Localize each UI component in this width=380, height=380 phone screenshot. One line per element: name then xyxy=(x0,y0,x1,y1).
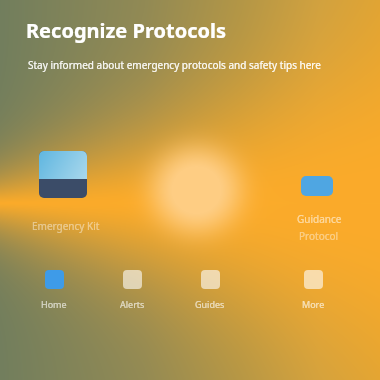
staticText: Recognize Protocols xyxy=(26,17,226,44)
staticText: Protocol xyxy=(299,229,339,243)
staticText: Guides xyxy=(195,298,225,310)
staticText: Stay informed about emergency protocols … xyxy=(28,58,321,72)
button[interactable]: Guides xyxy=(184,270,236,310)
button[interactable]: Badge xyxy=(301,176,333,196)
button[interactable]: More xyxy=(287,270,339,310)
button[interactable]: Alerts xyxy=(106,270,158,310)
staticText: Guidance xyxy=(297,212,342,226)
staticText: Alerts xyxy=(120,298,145,310)
staticText: Emergency Kit xyxy=(32,219,100,233)
staticText: Home xyxy=(41,298,67,310)
button[interactable]: Home xyxy=(28,270,80,310)
button[interactable] xyxy=(39,151,87,198)
staticText: More xyxy=(302,298,325,310)
